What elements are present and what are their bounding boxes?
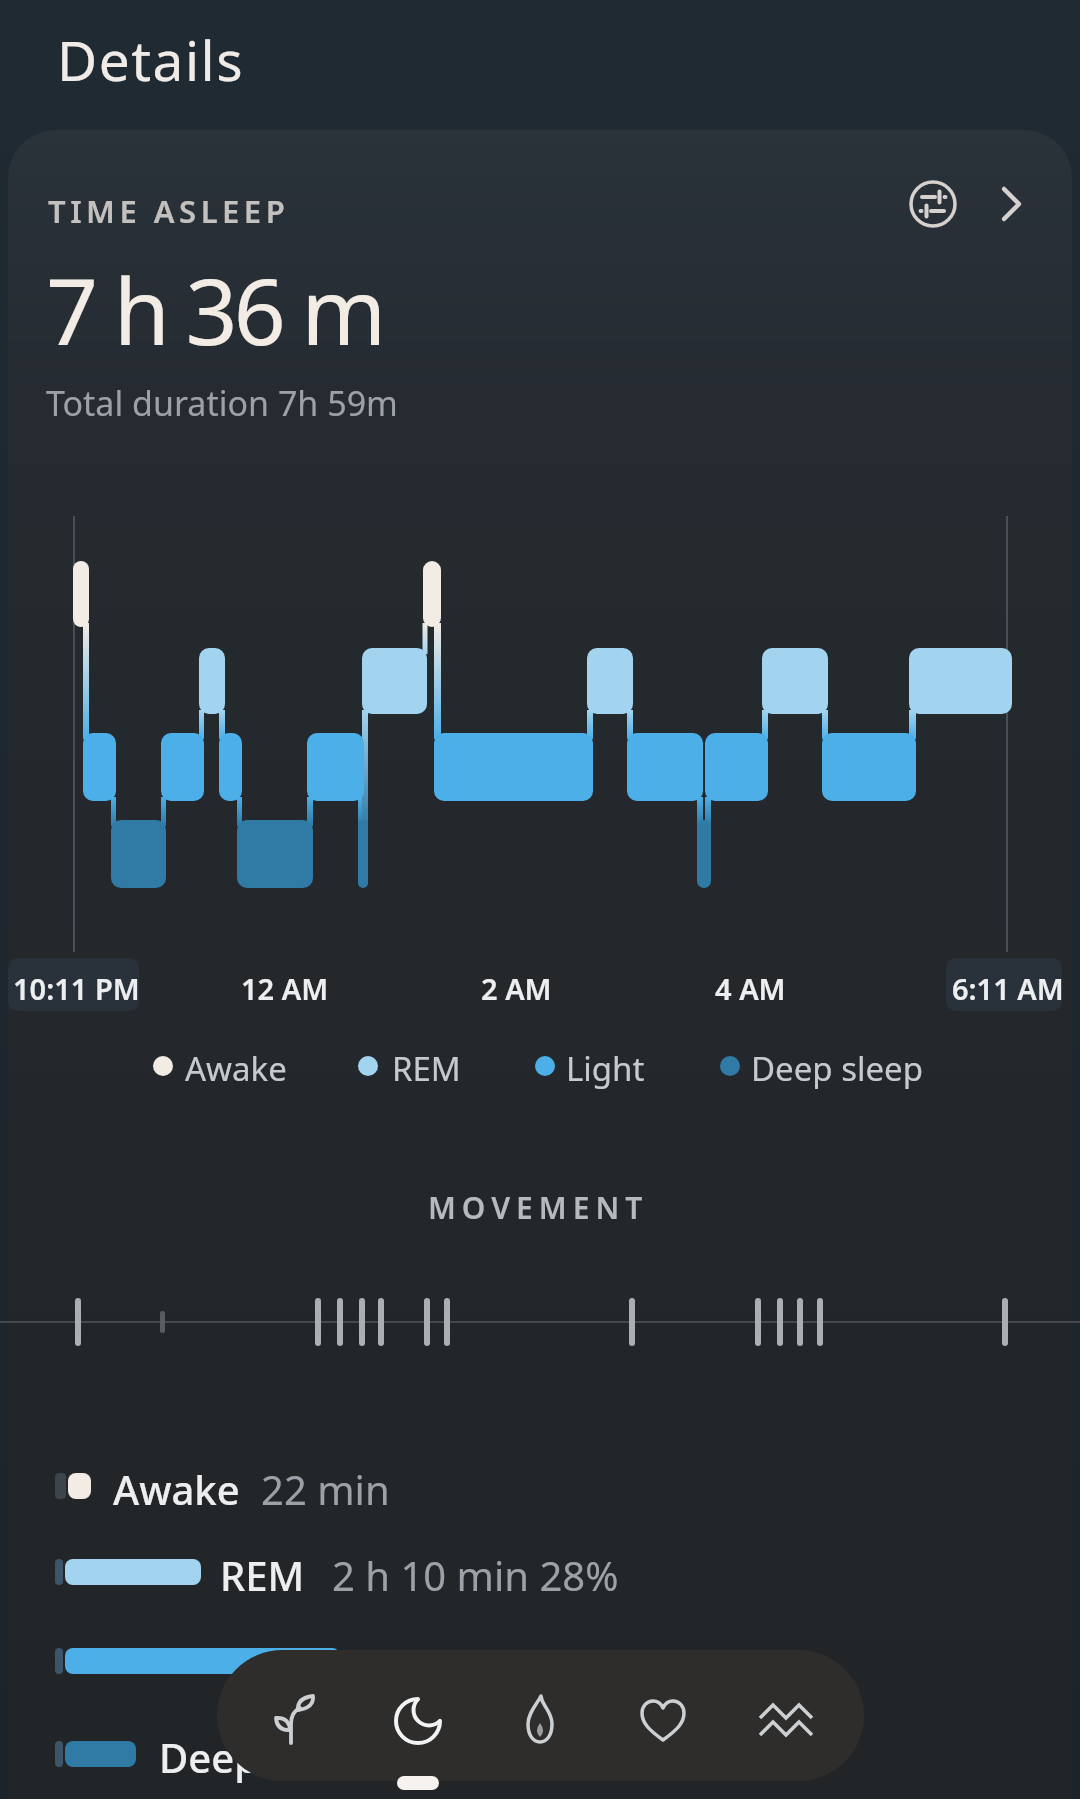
staticText: 7 h 36 m — [46, 248, 383, 372]
staticText: 2 h 10 min 28% — [332, 1548, 619, 1602]
staticText: 6:11 AM — [952, 969, 1064, 1008]
button[interactable] — [267, 1692, 323, 1748]
button[interactable] — [390, 1692, 446, 1748]
button[interactable] — [910, 181, 956, 227]
button[interactable] — [758, 1692, 814, 1748]
staticText: Awake — [113, 1462, 240, 1516]
staticText: TIME ASLEEP — [48, 190, 290, 232]
staticText: Details — [57, 22, 245, 97]
staticText: REM — [392, 1046, 461, 1091]
staticText: 12 AM — [241, 969, 329, 1008]
staticText: Light — [360, 1637, 458, 1691]
button[interactable] — [512, 1692, 568, 1748]
staticText: Awake — [185, 1046, 287, 1091]
button[interactable] — [1000, 186, 1024, 222]
staticText: REM — [220, 1548, 305, 1602]
staticText: Total duration 7h 59m — [46, 380, 398, 426]
staticText: 2 AM — [481, 969, 552, 1008]
staticText: 22 min — [261, 1462, 390, 1516]
staticText: Light — [566, 1046, 645, 1091]
button[interactable] — [635, 1692, 691, 1748]
staticText: 10:11 PM — [13, 969, 140, 1008]
staticText: Deep — [159, 1730, 259, 1784]
staticText: 4 AM — [715, 969, 786, 1008]
staticText: Deep sleep — [751, 1046, 924, 1091]
staticText: MOVEMENT — [428, 1187, 649, 1228]
